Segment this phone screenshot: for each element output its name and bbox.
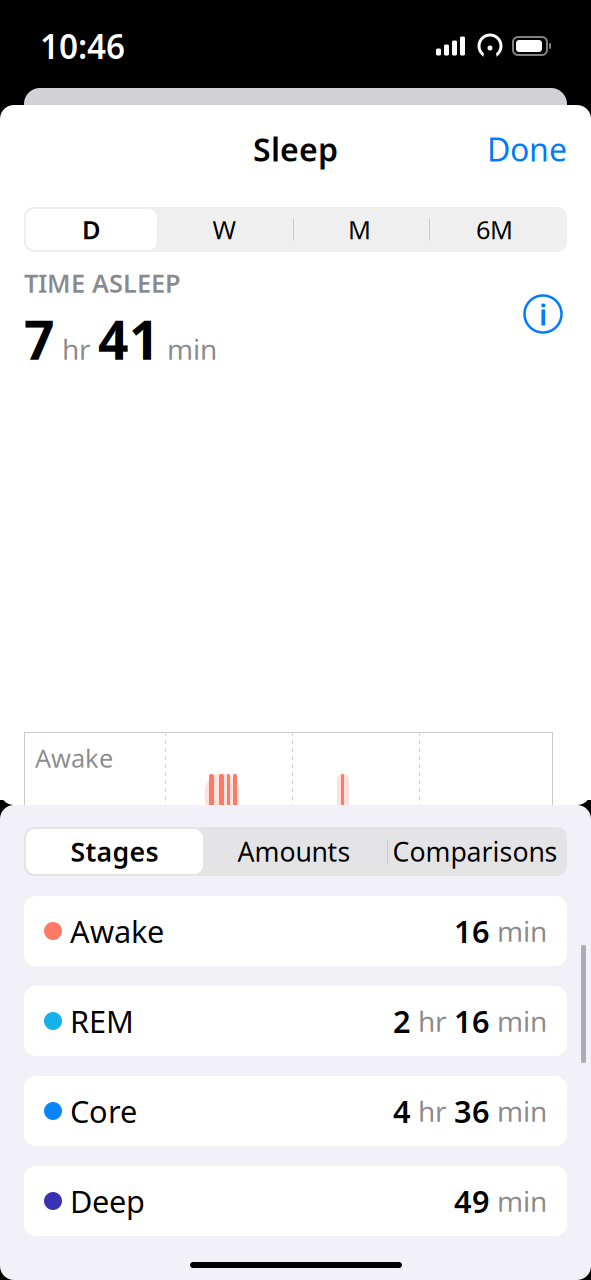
button[interactable]: M [292,209,427,250]
staticText: Amounts [237,834,350,869]
staticText: Awake [62,911,164,951]
staticText: Sleep [253,128,338,170]
staticText: Deep [62,1181,145,1221]
staticText: M [348,213,371,246]
staticText: hr [55,330,98,367]
staticText: REM [35,841,88,875]
staticText: 6M [476,213,513,246]
staticText: 49 [454,1181,490,1221]
button[interactable]: About sleep stages [519,290,567,338]
staticText: 3 AM [289,1138,349,1172]
staticText: 4 [393,1091,411,1131]
staticText: min [490,1002,547,1040]
staticText: i [539,294,547,333]
staticText: 6 AM [416,1138,476,1172]
staticText: Stages [70,834,158,869]
staticText: 12 AM [162,1138,236,1172]
staticText: 16 [454,911,490,951]
button[interactable]: Comparisons [385,829,565,874]
staticText: 10:46 [40,24,125,68]
staticText: W [212,213,236,246]
staticText: Awake [35,741,113,775]
staticText: 7 [24,304,55,374]
button[interactable]: 6M [427,209,562,250]
staticText: hr [411,1092,454,1130]
staticText: Deep [35,1041,97,1075]
button[interactable]: Stages [26,829,203,874]
staticText: D [82,213,101,246]
staticText: 16 [454,1001,490,1041]
button[interactable]: Deep [24,1166,567,1236]
button[interactable]: Awake [24,896,567,966]
button[interactable]: W [157,209,292,250]
button[interactable]: Core [24,1076,567,1146]
staticText: min [160,330,217,367]
staticText: min [490,912,547,950]
staticText: Core [35,941,90,975]
staticText: Comparisons [392,834,557,869]
staticText: 36 [454,1091,490,1131]
button[interactable]: Done [475,120,579,178]
staticText: 2 [393,1001,411,1041]
staticText: Core [62,1091,137,1131]
staticText: 41 [98,304,160,374]
button[interactable]: REM [24,986,567,1056]
staticText: hr [411,1002,454,1040]
staticText: REM [62,1001,134,1041]
staticText: min [490,1182,547,1220]
staticText: 9 PM [30,1138,89,1172]
staticText: Done [487,128,567,170]
staticText: TIME ASLEEP [24,266,181,300]
button[interactable]: D [26,209,157,250]
staticText: min [490,1092,547,1130]
button[interactable]: Amounts [203,829,385,874]
